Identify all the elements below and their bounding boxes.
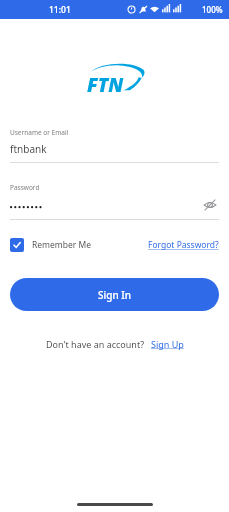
staticText: FTN — [87, 72, 124, 95]
staticText: 11:01 — [49, 4, 71, 16]
staticText: Don't have an account? — [46, 338, 145, 350]
button[interactable]: ftnbank — [10, 142, 219, 156]
staticText: Remember Me — [32, 239, 92, 251]
staticText: Username or Email — [10, 128, 69, 137]
button[interactable]: Show password — [201, 196, 219, 214]
staticText: Sign In — [98, 288, 132, 302]
staticText: Password — [10, 183, 40, 192]
staticText: Sign Up — [151, 338, 184, 350]
button[interactable]: Sign Up — [151, 338, 184, 350]
staticText: 100% — [202, 4, 223, 15]
button[interactable]: Forgot Password? — [148, 239, 219, 251]
staticText: Forgot Password? — [148, 239, 219, 251]
button[interactable] — [10, 200, 60, 210]
staticText: ftnbank — [10, 142, 47, 156]
button[interactable]: Remember Me — [10, 238, 92, 252]
button[interactable]: Sign In — [10, 278, 219, 311]
